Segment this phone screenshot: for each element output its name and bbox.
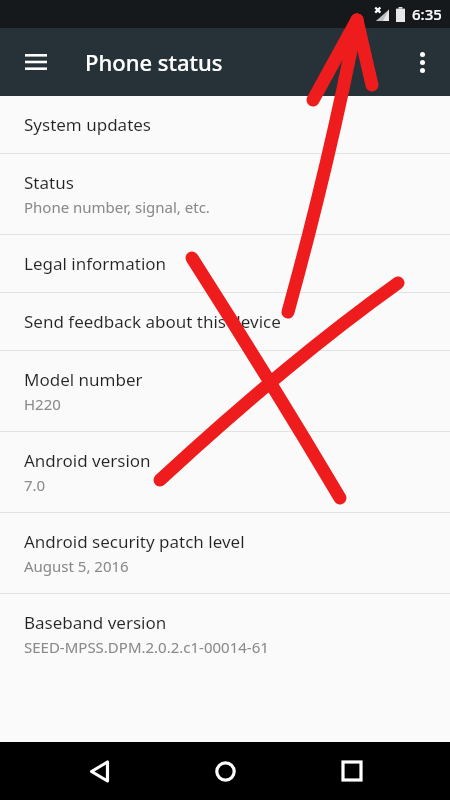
staticText: Android version: [24, 449, 151, 472]
button[interactable]: Android version: [0, 432, 450, 512]
staticText: Legal information: [24, 252, 167, 275]
staticText: August 5, 2016: [24, 556, 129, 576]
staticText: SEED-MPSS.DPM.2.0.2.c1-00014-61: [24, 637, 269, 657]
button[interactable]: Status: [0, 154, 450, 234]
staticText: Status: [24, 171, 74, 194]
button[interactable]: More options: [398, 38, 446, 86]
button[interactable]: Back: [71, 743, 127, 799]
button[interactable]: Recent apps: [324, 743, 380, 799]
staticText: H220: [24, 394, 61, 414]
button[interactable]: Send feedback about this device: [0, 293, 450, 350]
staticText: System updates: [24, 113, 152, 136]
staticText: 6:35: [412, 4, 442, 24]
staticText: Phone number, signal, etc.: [24, 197, 210, 217]
button[interactable]: Android security patch level: [0, 513, 450, 593]
staticText: Send feedback about this device: [24, 310, 281, 333]
staticText: Model number: [24, 368, 143, 391]
staticText: Android security patch level: [24, 530, 245, 553]
staticText: 7.0: [24, 475, 46, 495]
staticText: Baseband version: [24, 611, 167, 634]
button[interactable]: Legal information: [0, 235, 450, 292]
button[interactable]: System updates: [0, 96, 450, 153]
button[interactable]: Home: [197, 743, 253, 799]
button[interactable]: Open navigation drawer: [12, 38, 60, 86]
staticText: Phone status: [85, 47, 223, 77]
button[interactable]: Baseband version: [0, 594, 450, 674]
button[interactable]: Model number: [0, 351, 450, 431]
